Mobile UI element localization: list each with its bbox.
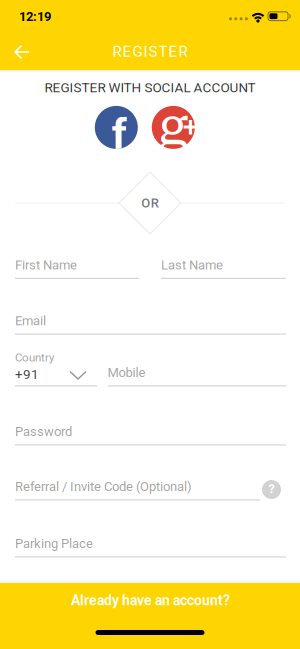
staticText: 12:19 (19, 9, 51, 24)
button[interactable]: Referral / Invite Code (Optional) (15, 478, 260, 500)
staticText: ? (268, 482, 274, 496)
staticText: + (183, 110, 199, 143)
button[interactable]: Mobile (107, 364, 286, 386)
button[interactable]: Email (15, 313, 286, 335)
button[interactable]: Register with Facebook (95, 106, 138, 149)
button[interactable]: Parking Place (15, 535, 286, 557)
button[interactable]: Country (15, 351, 97, 387)
button[interactable]: Register with Google (152, 106, 195, 149)
staticText: Parking Place (15, 536, 93, 551)
staticText: REGISTER (112, 43, 187, 60)
staticText: OR (141, 195, 159, 211)
staticText: Already have an account? (71, 592, 230, 609)
staticText: Mobile (107, 365, 145, 380)
staticText: First Name (15, 257, 77, 273)
staticText: REGISTER WITH SOCIAL ACCOUNT (44, 80, 255, 95)
button[interactable]: Referral code help (262, 480, 281, 499)
staticText: Email (15, 313, 46, 328)
button[interactable]: Last Name (161, 257, 286, 279)
staticText: f (112, 110, 127, 159)
button[interactable]: Password (15, 423, 286, 445)
button[interactable]: Already have an account? (40, 583, 260, 617)
staticText: Referral / Invite Code (Optional) (15, 479, 192, 494)
staticText: Last Name (161, 257, 223, 273)
staticText: Password (15, 424, 72, 439)
staticText: Country (15, 351, 54, 364)
button[interactable]: First Name (15, 257, 139, 279)
staticText: g (158, 94, 188, 155)
staticText: +91 (15, 367, 39, 382)
button[interactable]: Back (3, 33, 47, 71)
